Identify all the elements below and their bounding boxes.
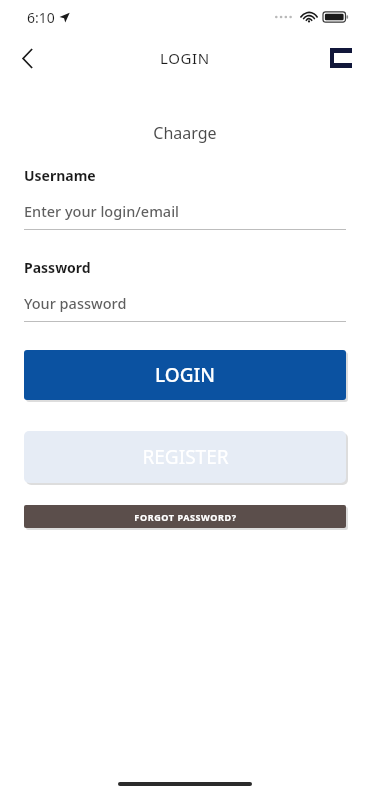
button[interactable]: FORGOT PASSWORD? <box>24 505 346 528</box>
staticText: 6:10 <box>27 8 55 27</box>
staticText: LOGIN <box>155 362 215 388</box>
button[interactable]: REGISTER <box>24 431 346 483</box>
button[interactable]: LOGIN <box>24 350 346 400</box>
staticText: Your password <box>24 293 127 313</box>
button[interactable]: Your password <box>24 293 346 313</box>
button[interactable]: Chaarge logo <box>318 36 362 80</box>
staticText: Chaarge <box>0 122 370 144</box>
button[interactable]: Back <box>6 37 48 79</box>
button[interactable]: Enter your login/email <box>24 201 346 221</box>
staticText: REGISTER <box>142 444 229 470</box>
staticText: Username <box>24 166 96 185</box>
staticText: LOGIN <box>160 48 210 68</box>
staticText: Enter your login/email <box>24 201 179 221</box>
staticText: FORGOT PASSWORD? <box>134 511 237 523</box>
staticText: Password <box>24 258 91 277</box>
